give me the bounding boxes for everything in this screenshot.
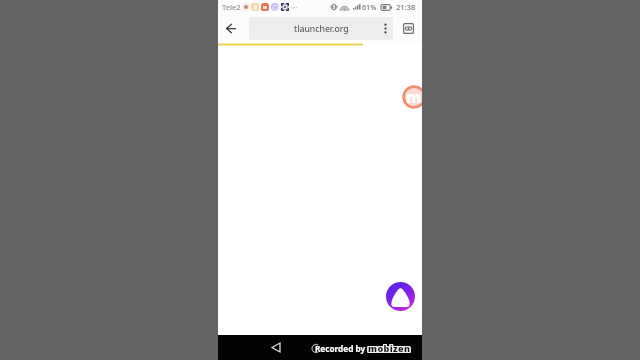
button[interactable]: Tabs (394, 14, 422, 43)
staticText: mobizen (368, 341, 411, 353)
staticText: 61% (362, 2, 377, 12)
staticText: mobizen (369, 343, 412, 355)
button[interactable]: tlauncher.org (249, 17, 393, 40)
staticText: 21:38 (396, 2, 416, 12)
staticText: mobizen (368, 343, 411, 355)
staticText: mobizen (367, 343, 410, 355)
button[interactable]: Back (218, 14, 245, 43)
staticText: tlauncher.org (294, 23, 349, 35)
staticText: m (406, 87, 422, 107)
staticText: mobizen (369, 342, 412, 354)
button[interactable]: Back (254, 335, 298, 360)
staticText: Recorded by (315, 343, 366, 354)
staticText: mobizen (369, 341, 412, 353)
staticText: mobizen (367, 342, 410, 354)
button[interactable]: More options (377, 17, 393, 40)
button[interactable]: Alice assistant (386, 282, 415, 311)
button[interactable]: Mobizen recorder (402, 85, 422, 109)
staticText: mobizen (368, 342, 411, 354)
staticText: mobizen (367, 341, 410, 353)
staticText: Tele2 (222, 2, 241, 12)
